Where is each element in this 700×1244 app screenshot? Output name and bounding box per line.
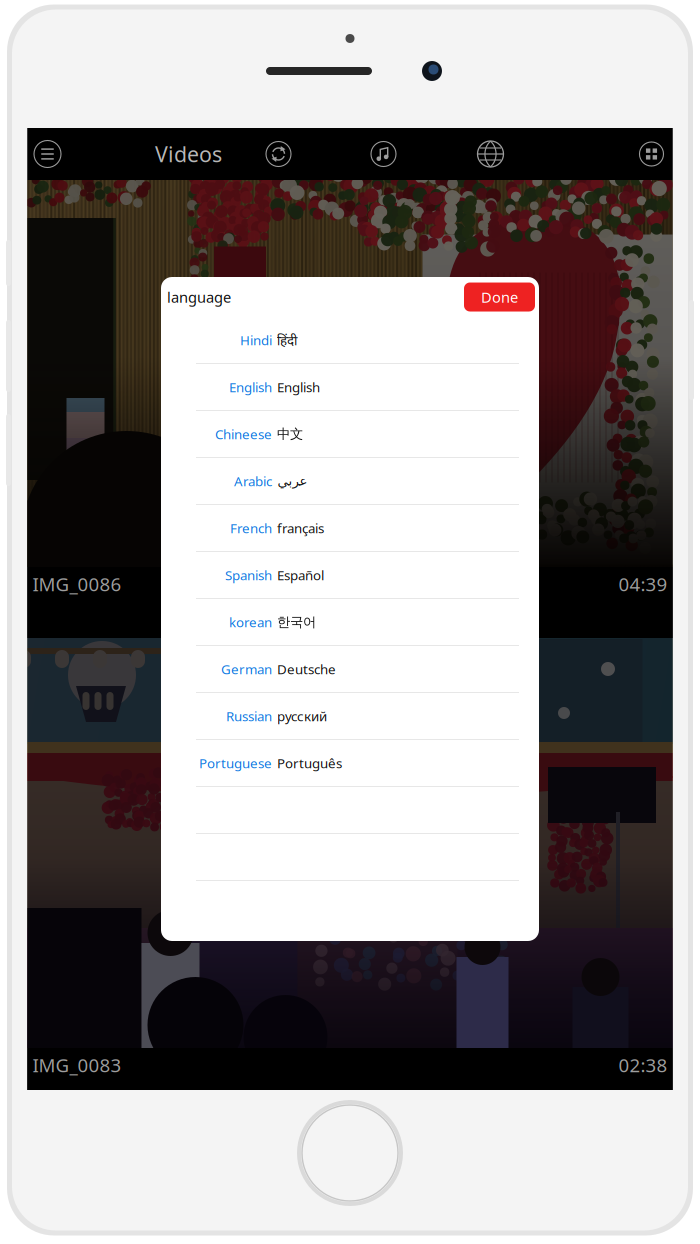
staticText: عربي [277,473,307,488]
staticText: Hindi [240,331,272,349]
button[interactable]: Arabic [161,458,539,505]
staticText: English [277,378,320,396]
button[interactable]: Portuguese [161,740,539,787]
staticText: French [230,519,272,537]
staticText: Russian [226,707,272,725]
staticText: Español [277,566,324,584]
button[interactable]: Refresh [257,128,299,180]
staticText: русский [277,707,327,725]
button[interactable]: Russian [161,693,539,740]
staticText: français [277,519,324,537]
staticText: language [167,287,231,307]
staticText: 中文 [277,426,303,442]
staticText: 한국어 [277,614,316,630]
button[interactable]: Grid view [634,128,668,180]
button[interactable]: Done [464,282,535,311]
staticText: korean [229,613,272,631]
staticText: German [221,660,272,678]
button[interactable]: Language [469,128,511,180]
staticText: IMG_0083 [32,1053,121,1077]
button[interactable]: English [161,364,539,411]
button[interactable]: Hindi [161,317,539,364]
staticText: Deutsche [277,660,336,678]
staticText: Spanish [225,566,272,584]
button[interactable]: French [161,505,539,552]
button[interactable]: Chineese [161,411,539,458]
staticText: Português [277,754,342,772]
staticText: English [229,378,272,396]
staticText: Arabic [234,472,272,490]
staticText: Chineese [215,425,272,443]
button[interactable]: Spanish [161,552,539,599]
staticText: Videos [155,140,222,168]
button[interactable]: German [161,646,539,693]
staticText: हिंदी [277,331,297,349]
button[interactable]: Menu [26,128,68,180]
button[interactable]: korean [161,599,539,646]
staticText: 02:38 [618,1053,667,1077]
staticText: Done [481,287,518,307]
staticText: 04:39 [618,572,667,596]
staticText: Portuguese [199,754,272,772]
staticText: IMG_0086 [32,572,121,596]
button[interactable]: Music [362,128,404,180]
